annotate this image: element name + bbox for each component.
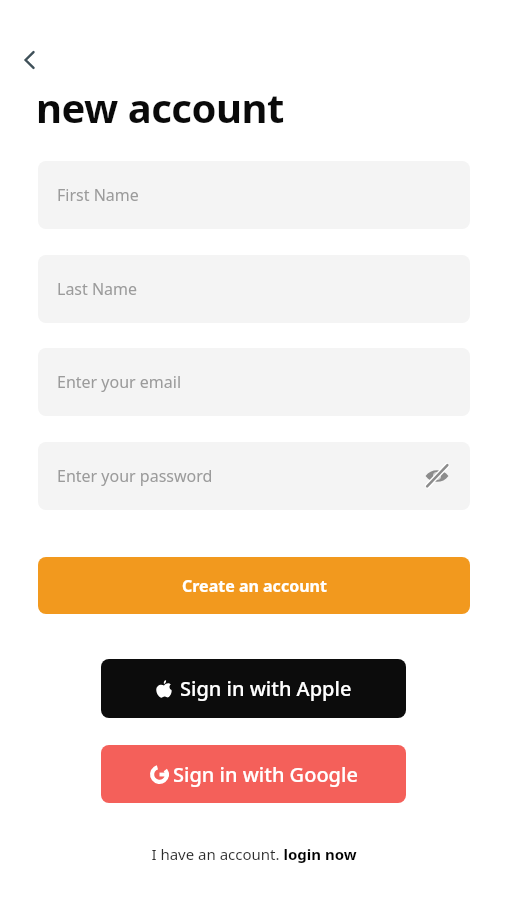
staticText: I have an account. login now (151, 844, 357, 864)
staticText: Enter your password (57, 465, 213, 487)
button[interactable]: I have an account. login now (0, 838, 507, 870)
staticText: new account (36, 80, 284, 134)
button[interactable]: Enter your email (38, 348, 470, 416)
button[interactable]: Create an account (38, 557, 470, 614)
staticText: Last Name (57, 278, 138, 300)
button[interactable]: First Name (38, 161, 470, 229)
button[interactable]: Show password (420, 459, 454, 493)
staticText: Sign in with Google (173, 761, 358, 788)
button[interactable]: Sign in with Google (101, 745, 406, 803)
button[interactable]: Sign in with Apple (101, 659, 406, 718)
button[interactable]: Back (8, 38, 52, 82)
staticText: Enter your email (57, 371, 182, 393)
staticText: First Name (57, 184, 139, 206)
button[interactable]: Enter your password (38, 442, 470, 510)
button[interactable]: Last Name (38, 255, 470, 323)
staticText: Sign in with Apple (180, 675, 352, 702)
staticText: Create an account (182, 575, 327, 597)
